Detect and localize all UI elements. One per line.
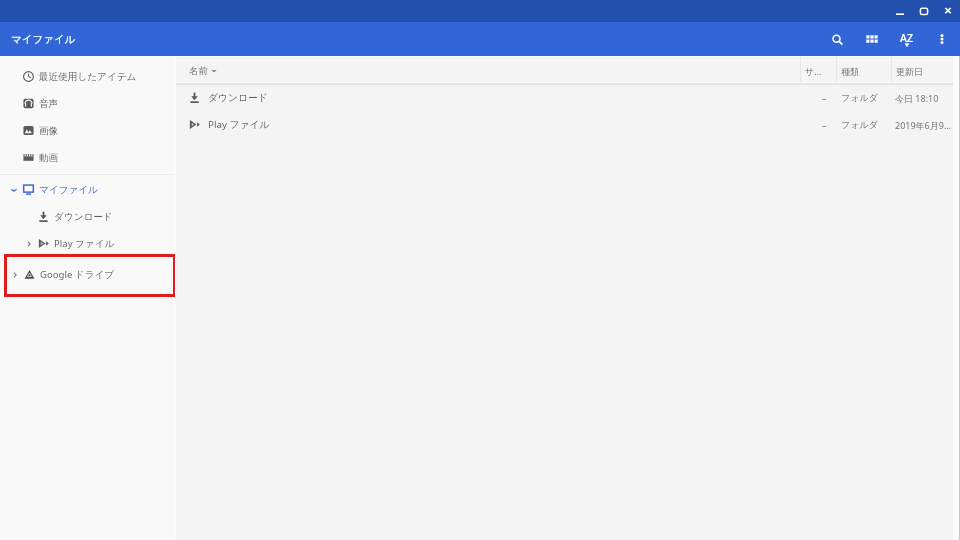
staticText: Play ファイル: [208, 118, 270, 131]
staticText: サ…: [805, 65, 822, 77]
button[interactable]: Close: [936, 0, 960, 22]
staticText: 種類: [841, 66, 859, 77]
staticText: 2019年6月9…: [895, 119, 952, 131]
staticText: マイファイル: [11, 33, 76, 46]
staticText: フォルダ: [841, 119, 878, 130]
staticText: 更新日: [896, 66, 923, 77]
button[interactable]: ダウンロード: [176, 84, 960, 111]
button[interactable]: 名前: [176, 57, 800, 85]
button[interactable]: サ…: [800, 57, 836, 85]
staticText: 名前: [189, 65, 208, 77]
staticText: ダウンロード: [208, 92, 268, 104]
staticText: 音声: [39, 98, 59, 110]
staticText: 最近使用したアイテム: [39, 71, 137, 83]
button[interactable]: Minimize: [888, 0, 912, 22]
staticText: 動画: [39, 152, 59, 164]
staticText: 画像: [39, 125, 59, 137]
button[interactable]: 最近使用したアイテム: [0, 63, 176, 90]
button[interactable]: 動画: [0, 144, 176, 171]
button[interactable]: 更新日: [891, 57, 960, 85]
button[interactable]: More options: [924, 22, 959, 56]
button[interactable]: Maximize: [912, 0, 936, 22]
staticText: AZ: [900, 31, 913, 45]
button[interactable]: Grid view: [854, 22, 889, 56]
staticText: ダウンロード: [54, 211, 113, 223]
staticText: マイファイル: [39, 184, 98, 196]
button[interactable]: 音声: [0, 90, 176, 117]
button[interactable]: 種類: [836, 57, 891, 85]
button[interactable]: Sort A to Z: [889, 22, 924, 56]
staticText: 今日 18:10: [895, 92, 939, 104]
staticText: –: [822, 92, 827, 104]
button[interactable]: 画像: [0, 117, 176, 144]
staticText: Google ドライブ: [40, 268, 115, 281]
button[interactable]: ダウンロード: [0, 203, 176, 230]
button[interactable]: マイファイル: [0, 176, 176, 203]
button[interactable]: Search: [819, 22, 854, 56]
staticText: フォルダ: [841, 92, 878, 103]
button[interactable]: Play ファイル: [0, 230, 176, 257]
button[interactable]: Google ドライブ: [0, 261, 176, 288]
staticText: Play ファイル: [54, 237, 115, 250]
staticText: –: [822, 119, 827, 131]
button[interactable]: Play ファイル: [176, 111, 960, 138]
